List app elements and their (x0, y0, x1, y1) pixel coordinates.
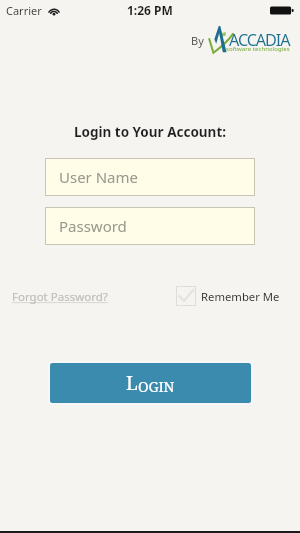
button[interactable]: Remember Me (176, 286, 280, 306)
staticText: Remember Me (201, 289, 280, 304)
staticText: User Name (59, 167, 139, 187)
button[interactable]: User Name (45, 158, 255, 196)
staticText: L (126, 370, 138, 396)
staticText: By (191, 33, 204, 48)
staticText: Login to Your Account: (0, 123, 300, 141)
staticText: Password (59, 216, 127, 236)
button[interactable]: Password (45, 207, 255, 245)
staticText: Forgot Password? (12, 289, 108, 305)
staticText: ACCADIA (229, 29, 290, 51)
button[interactable]: Forgot Password? (12, 289, 108, 305)
staticText: OGIN (138, 377, 175, 396)
staticText: software technologies (226, 45, 290, 53)
staticText: Carrier (6, 3, 42, 18)
button[interactable]: L (48, 361, 253, 405)
staticText: 1:26 PM (127, 2, 173, 18)
